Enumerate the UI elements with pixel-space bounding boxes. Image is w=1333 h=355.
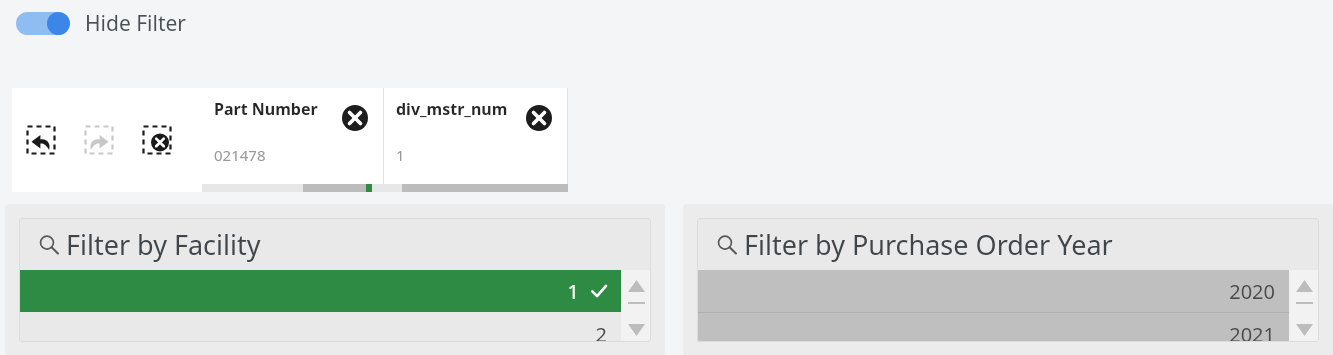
button[interactable]: Step back xyxy=(12,88,70,192)
button[interactable]: Step forward xyxy=(70,88,128,192)
button[interactable]: 2020 xyxy=(697,270,1289,312)
staticText: 1 xyxy=(396,145,405,165)
staticText: Part Number xyxy=(214,98,318,120)
button[interactable]: 2021 xyxy=(697,313,1289,342)
button[interactable]: div_mstr_num xyxy=(384,88,568,192)
button[interactable]: Scroll down xyxy=(1289,304,1319,342)
staticText: Hide Filter xyxy=(85,9,187,38)
staticText: 2020 xyxy=(1229,278,1275,305)
button[interactable]: Scroll up xyxy=(1289,270,1319,302)
staticText: 021478 xyxy=(214,145,266,165)
button[interactable]: 1 xyxy=(19,270,621,312)
button[interactable]: 2 xyxy=(19,313,621,342)
staticText: Filter by Purchase Order Year xyxy=(744,226,1113,263)
button[interactable]: Hide Filter xyxy=(10,4,193,43)
button[interactable]: Part Number xyxy=(202,88,384,192)
staticText: Filter by Facility xyxy=(66,226,261,263)
staticText: 1 xyxy=(567,278,579,305)
staticText: 2 xyxy=(595,321,607,342)
button[interactable]: Filter by Purchase Order Year xyxy=(697,218,1319,270)
button[interactable]: Scroll down xyxy=(621,304,651,342)
button[interactable]: Remove div_mstr_num filter xyxy=(526,105,552,131)
staticText: div_mstr_num xyxy=(396,98,508,120)
button[interactable]: Filter by Facility xyxy=(19,218,651,270)
button[interactable]: Scroll up xyxy=(621,270,651,302)
button[interactable]: Clear all selections xyxy=(128,88,186,192)
staticText: 2021 xyxy=(1229,321,1275,342)
button[interactable]: Remove Part Number filter xyxy=(342,105,368,131)
